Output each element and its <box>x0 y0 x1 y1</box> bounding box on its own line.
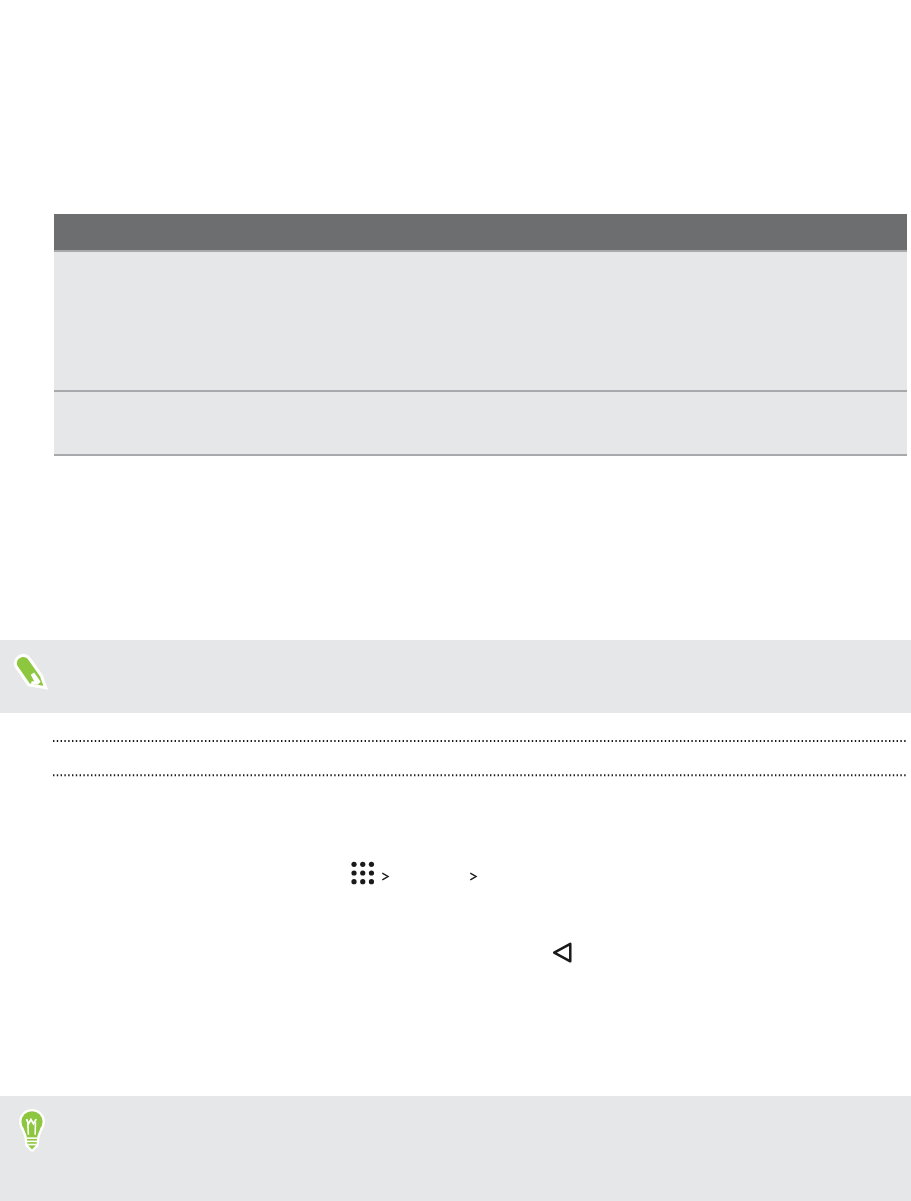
button[interactable]: Tip <box>0 1096 911 1201</box>
button[interactable]: Then <box>381 872 389 881</box>
button[interactable]: Note <box>12 652 48 694</box>
button[interactable]: All apps <box>350 860 376 886</box>
button[interactable]: Then <box>469 872 477 881</box>
button[interactable]: Tip <box>16 1108 48 1154</box>
button[interactable]: Back <box>550 940 574 964</box>
button[interactable]: Note <box>0 640 911 713</box>
